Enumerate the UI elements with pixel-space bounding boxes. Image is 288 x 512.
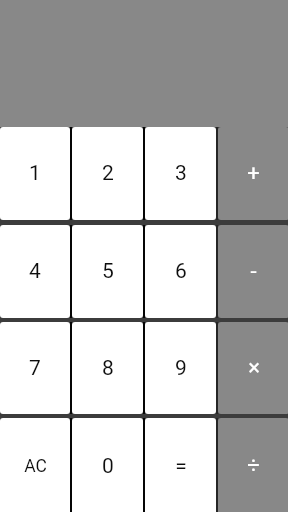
staticText: 9 — [175, 356, 187, 381]
button[interactable]: 6 — [145, 225, 216, 318]
button[interactable]: 9 — [145, 322, 216, 414]
staticText: 8 — [102, 356, 114, 381]
button[interactable]: 5 — [72, 225, 143, 318]
button[interactable]: Divide — [218, 418, 288, 512]
staticText: × — [248, 355, 260, 381]
button[interactable]: = — [145, 418, 216, 512]
button[interactable]: Multiply — [218, 322, 288, 414]
staticText: 3 — [175, 161, 187, 186]
staticText: 7 — [29, 356, 41, 381]
staticText: 5 — [102, 259, 114, 284]
staticText: - — [250, 259, 257, 285]
staticText: + — [247, 161, 260, 187]
button[interactable]: 2 — [72, 127, 143, 220]
button[interactable]: 7 — [0, 322, 70, 414]
button[interactable]: 4 — [0, 225, 70, 318]
button[interactable]: 3 — [145, 127, 216, 220]
staticText: 2 — [102, 161, 114, 186]
button[interactable]: 1 — [0, 127, 70, 220]
staticText: = — [175, 454, 187, 479]
staticText: AC — [24, 456, 47, 477]
button[interactable]: Minus — [218, 225, 288, 318]
button[interactable]: AC — [0, 418, 70, 512]
staticText: 4 — [29, 259, 41, 284]
button[interactable]: Plus — [218, 127, 288, 220]
button[interactable]: 0 — [72, 418, 143, 512]
staticText: ÷ — [247, 453, 260, 479]
staticText: 6 — [175, 259, 187, 284]
button[interactable]: 8 — [72, 322, 143, 414]
staticText: 1 — [29, 161, 41, 186]
staticText: 0 — [102, 454, 114, 479]
